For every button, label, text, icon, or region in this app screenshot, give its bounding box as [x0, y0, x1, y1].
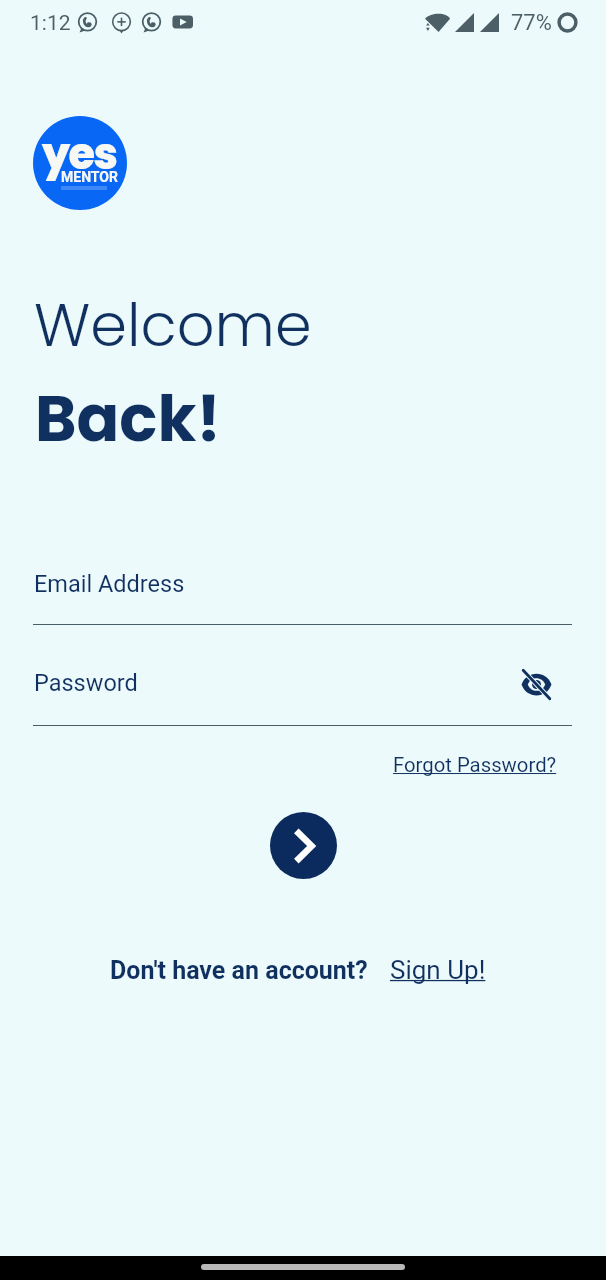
staticText: Sign Up! [390, 955, 486, 985]
staticText: Email Address [34, 570, 185, 598]
staticText: Welcome [34, 284, 312, 367]
button[interactable]: Sign Up! [390, 955, 486, 985]
button[interactable]: Yes Mentor logo [33, 116, 127, 210]
staticText: Don't have an account? [110, 956, 368, 985]
staticText: Back! [35, 375, 222, 463]
staticText: yes [42, 124, 117, 184]
button[interactable]: Password [33, 665, 572, 726]
staticText: 77% [511, 10, 552, 36]
staticText: Forgot Password? [393, 753, 557, 777]
button[interactable]: Email Address [33, 566, 572, 625]
staticText: 1:12 [30, 11, 71, 36]
button[interactable]: Forgot Password? [393, 753, 557, 777]
button[interactable]: Sign in [270, 812, 337, 879]
button[interactable]: Show password [514, 662, 558, 706]
staticText: MENTOR [61, 169, 118, 185]
staticText: Password [34, 669, 138, 697]
